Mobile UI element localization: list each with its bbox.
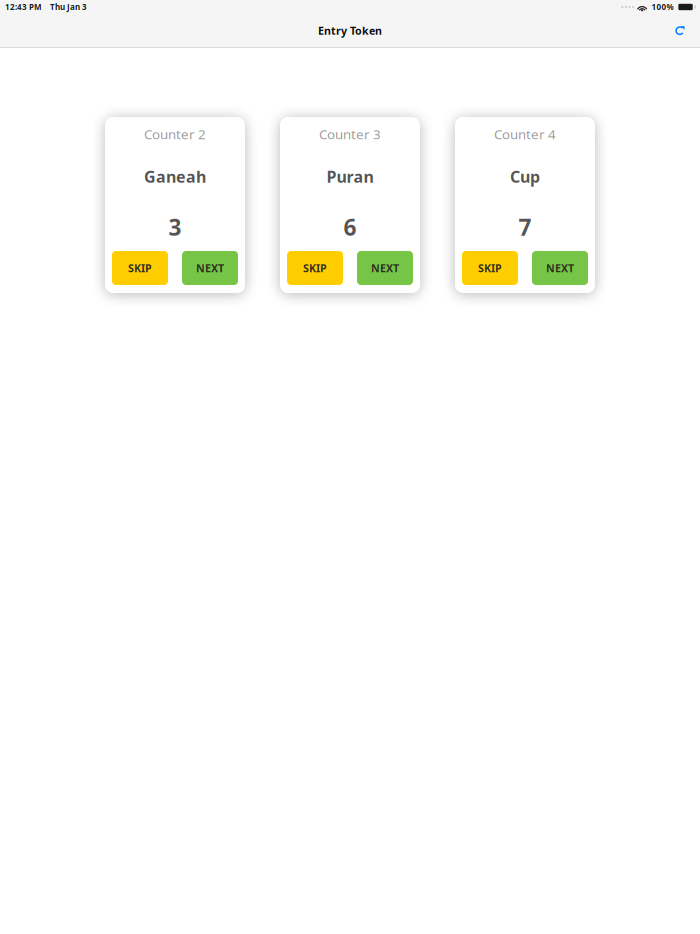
staticText: Counter 4 — [494, 125, 556, 143]
staticText: 6 — [343, 212, 356, 242]
staticText: SKIP — [128, 261, 152, 275]
button[interactable]: NEXT — [357, 251, 413, 285]
staticText: Cup — [510, 166, 540, 187]
staticText: NEXT — [371, 261, 399, 275]
staticText: Ganeah — [144, 166, 206, 187]
staticText: 12:43 PM — [5, 2, 42, 12]
staticText: Thu Jan 3 — [50, 2, 87, 12]
button[interactable]: SKIP — [287, 251, 343, 285]
staticText: SKIP — [303, 261, 327, 275]
staticText: Counter 3 — [319, 125, 381, 143]
staticText: Puran — [326, 166, 373, 187]
staticText: 7 — [518, 212, 531, 242]
staticText: SKIP — [478, 261, 502, 275]
staticText: NEXT — [546, 261, 574, 275]
button[interactable]: SKIP — [112, 251, 168, 285]
staticText: Counter 2 — [144, 125, 206, 143]
button[interactable]: NEXT — [182, 251, 238, 285]
staticText: Entry Token — [318, 23, 382, 38]
staticText: NEXT — [196, 261, 224, 275]
button[interactable]: SKIP — [462, 251, 518, 285]
button[interactable]: NEXT — [532, 251, 588, 285]
button[interactable]: Refresh — [665, 17, 695, 43]
staticText: 100% — [651, 2, 673, 12]
staticText: 3 — [168, 212, 181, 242]
